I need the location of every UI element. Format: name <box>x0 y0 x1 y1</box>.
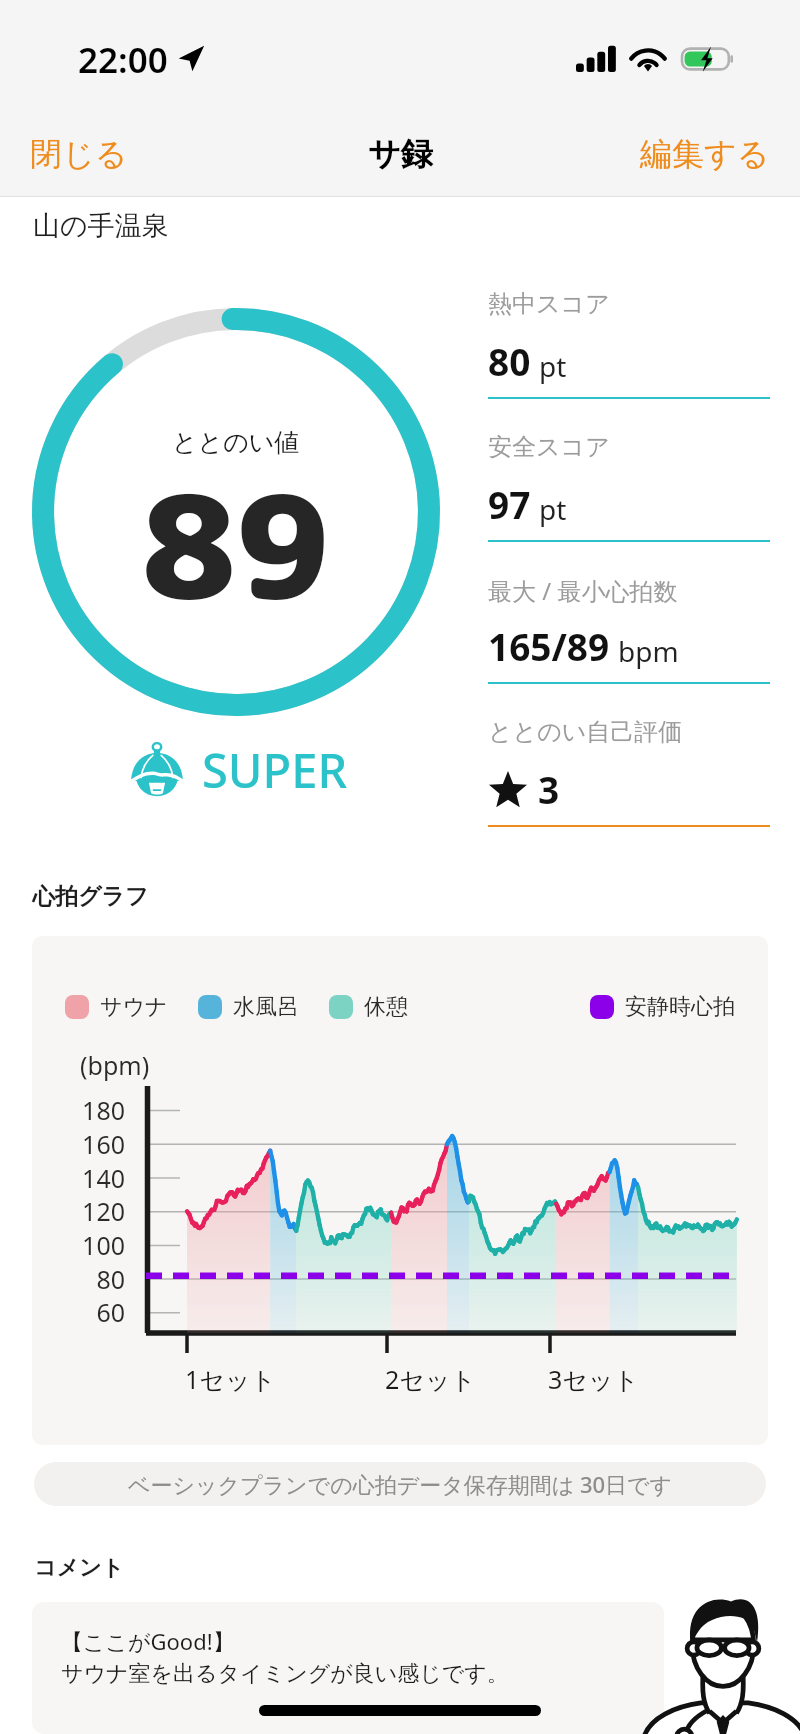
staticText: 【ここがGood!】 <box>61 1626 235 1656</box>
staticText: 編集する <box>640 134 770 174</box>
staticText: 80 <box>56 1262 125 1296</box>
staticText: サウナ <box>100 993 168 1021</box>
staticText: 閉じる <box>30 134 128 174</box>
staticText: 22:00 <box>78 36 168 84</box>
staticText: 最大 / 最小心拍数 <box>488 574 678 607</box>
staticText: 安静時心拍 <box>625 993 735 1021</box>
button[interactable]: 編集する <box>610 120 800 188</box>
staticText: ととのい自己評価 <box>488 717 683 747</box>
staticText: 100 <box>56 1228 125 1262</box>
staticText: 山の手温泉 <box>33 209 169 243</box>
staticText: 3 <box>538 764 560 814</box>
staticText: 80 <box>488 336 531 386</box>
staticText: サ録 <box>368 134 433 174</box>
staticText: コメント <box>34 1554 125 1582</box>
staticText: 97 <box>488 479 531 529</box>
staticText: 165/89 <box>488 621 610 671</box>
staticText: 2セット <box>385 1362 477 1396</box>
staticText: ととのい値 <box>172 427 300 458</box>
staticText: pt <box>539 347 567 385</box>
staticText: サウナ室を出るタイミングが良い感じです。 <box>61 1660 509 1688</box>
staticText: 160 <box>56 1127 125 1161</box>
staticText: 1セット <box>185 1362 277 1396</box>
staticText: bpm <box>618 632 679 670</box>
staticText: 熱中スコア <box>488 289 610 319</box>
staticText: 3セット <box>548 1362 640 1396</box>
button[interactable]: 閉じる <box>0 120 158 188</box>
staticText: SUPER <box>202 738 348 802</box>
staticText: 安全スコア <box>488 432 610 462</box>
staticText: 180 <box>56 1093 125 1127</box>
staticText: 休憩 <box>364 993 408 1021</box>
staticText: 水風呂 <box>233 993 299 1021</box>
staticText: 心拍グラフ <box>32 882 149 911</box>
staticText: (bpm) <box>80 1048 150 1082</box>
staticText: ベーシックプランでの心拍データ保存期間は 30日です <box>128 1469 673 1499</box>
staticText: 140 <box>56 1161 125 1195</box>
staticText: 89 <box>142 446 330 644</box>
staticText: pt <box>539 490 567 528</box>
staticText: 120 <box>56 1194 125 1228</box>
staticText: 60 <box>56 1295 125 1329</box>
